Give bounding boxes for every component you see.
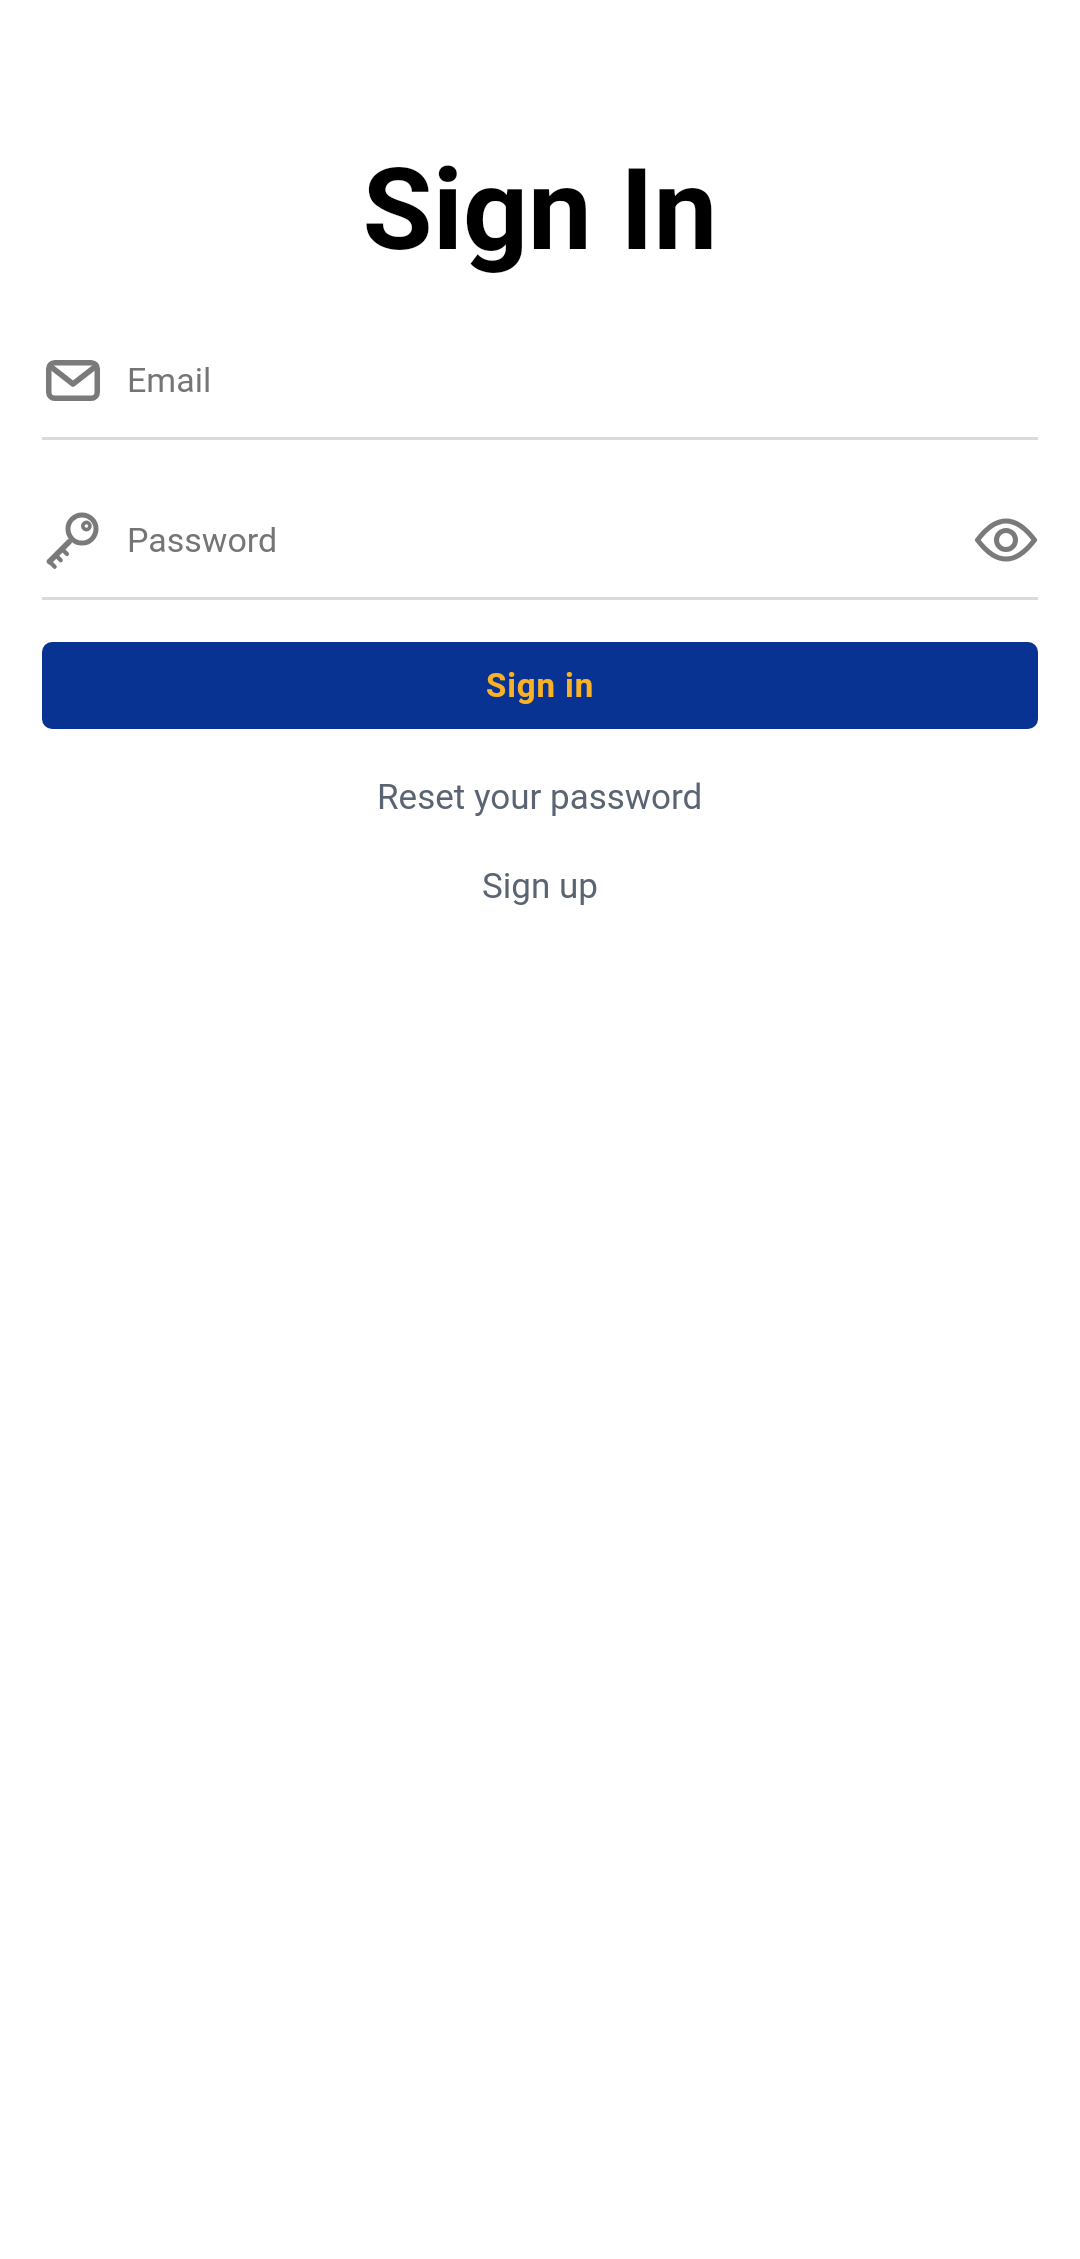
button[interactable]: Sign up bbox=[482, 856, 598, 916]
staticText: Sign In bbox=[0, 143, 1080, 277]
button[interactable]: Reset your password bbox=[377, 767, 703, 827]
staticText: Sign up bbox=[482, 866, 598, 907]
button[interactable]: Email bbox=[0, 340, 1080, 420]
staticText: Reset your password bbox=[377, 777, 703, 818]
staticText: Sign in bbox=[486, 666, 595, 705]
staticText: Password bbox=[127, 520, 278, 560]
staticText: Email bbox=[127, 360, 212, 400]
button[interactable]: Password bbox=[0, 500, 1080, 580]
button[interactable]: Sign in bbox=[42, 642, 1038, 729]
